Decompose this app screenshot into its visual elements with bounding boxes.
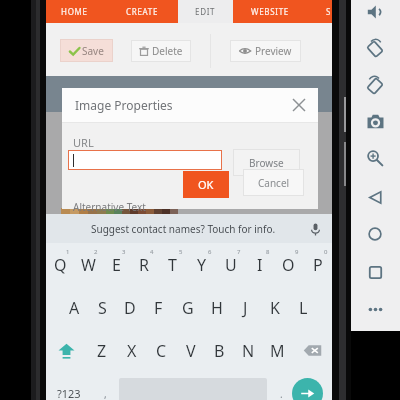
- button[interactable]: 9: [274, 243, 303, 286]
- staticText: W: [81, 254, 96, 276]
- button[interactable]: WEBSITE: [240, 0, 300, 23]
- staticText: O: [282, 254, 295, 276]
- staticText: R: [139, 254, 149, 276]
- staticText: X: [127, 340, 137, 362]
- button[interactable]: HOME: [44, 0, 104, 23]
- staticText: T: [168, 254, 177, 276]
- button[interactable]: ?123: [46, 372, 92, 400]
- staticText: WEBSITE: [251, 6, 289, 17]
- staticText: A: [69, 297, 80, 319]
- button[interactable]: D: [116, 286, 144, 329]
- button[interactable]: N: [234, 329, 263, 372]
- button[interactable]: J: [231, 286, 260, 329]
- staticText: M: [270, 340, 285, 362]
- staticText: F: [154, 297, 163, 319]
- staticText: J: [243, 297, 248, 319]
- staticText: 4: [150, 248, 154, 256]
- staticText: Delete: [152, 44, 183, 58]
- button[interactable]: 5: [158, 243, 187, 286]
- button[interactable]: 2: [74, 243, 102, 286]
- staticText: Browse: [249, 156, 284, 170]
- staticText: S: [326, 6, 332, 17]
- button[interactable]: 7: [216, 243, 245, 286]
- button[interactable]: Overview: [363, 260, 387, 284]
- button[interactable]: More: [363, 297, 387, 321]
- staticText: 3: [122, 248, 126, 256]
- button[interactable]: S: [299, 0, 359, 23]
- staticText: L: [299, 297, 308, 319]
- staticText: Preview: [255, 44, 292, 58]
- button[interactable]: Volume: [363, 0, 387, 24]
- staticText: 2: [94, 248, 98, 256]
- button[interactable]: V: [176, 329, 205, 372]
- button[interactable]: Rotate left: [363, 36, 387, 60]
- button[interactable]: Rotate right: [363, 73, 387, 97]
- button[interactable]: L: [289, 286, 318, 329]
- button[interactable]: OK: [183, 171, 229, 198]
- button[interactable]: 4: [130, 243, 158, 286]
- staticText: G: [182, 297, 194, 319]
- button[interactable]: Preview: [230, 40, 301, 62]
- button[interactable]: EDIT: [178, 0, 233, 23]
- button[interactable]: Back: [363, 185, 387, 209]
- staticText: Q: [54, 254, 67, 276]
- staticText: Suggest contact names? Touch for info.: [91, 222, 276, 236]
- button[interactable]: C: [147, 329, 176, 372]
- staticText: 0: [324, 248, 328, 256]
- button[interactable]: Close dialog: [288, 94, 310, 116]
- staticText: B: [214, 340, 225, 362]
- staticText: D: [124, 297, 136, 319]
- button[interactable]: Enter: [292, 378, 323, 400]
- staticText: 7: [237, 248, 241, 256]
- button[interactable]: Save: [60, 39, 113, 62]
- button[interactable]: K: [260, 286, 289, 329]
- button[interactable]: A: [60, 286, 88, 329]
- button[interactable]: H: [202, 286, 231, 329]
- button[interactable]: .: [267, 372, 295, 400]
- button[interactable]: Z: [87, 329, 117, 372]
- staticText: 8: [266, 248, 270, 256]
- button[interactable]: 3: [102, 243, 130, 286]
- button[interactable]: 8: [245, 243, 274, 286]
- button[interactable]: Screenshot: [363, 109, 387, 133]
- button[interactable]: 6: [187, 243, 216, 286]
- staticText: Save: [82, 44, 104, 58]
- button[interactable]: X: [117, 329, 147, 372]
- staticText: 6: [208, 248, 212, 256]
- button[interactable]: CREATE: [112, 0, 172, 23]
- staticText: N: [242, 340, 255, 362]
- staticText: E: [112, 254, 121, 276]
- button[interactable]: Backspace: [292, 329, 332, 372]
- button[interactable]: M: [263, 329, 292, 372]
- button[interactable]: Zoom: [363, 146, 387, 170]
- button[interactable]: 0: [303, 243, 332, 286]
- staticText: Cancel: [258, 176, 290, 190]
- staticText: OK: [198, 177, 214, 192]
- staticText: S: [98, 297, 107, 319]
- button[interactable]: Voice input: [306, 220, 324, 238]
- staticText: EDIT: [195, 6, 216, 17]
- button[interactable]: Home: [363, 222, 387, 246]
- staticText: Z: [97, 340, 107, 362]
- staticText: 9: [295, 248, 299, 256]
- button[interactable]: Delete: [131, 40, 191, 62]
- staticText: H: [211, 297, 223, 319]
- staticText: 5: [179, 248, 183, 256]
- staticText: HOME: [61, 6, 88, 17]
- staticText: Alternative Text: [73, 200, 146, 214]
- button[interactable]: G: [173, 286, 202, 329]
- button[interactable]: Cancel: [243, 169, 304, 196]
- staticText: .: [280, 387, 283, 400]
- button[interactable]: Shift: [46, 329, 87, 372]
- button[interactable]: Emoji: [92, 372, 119, 400]
- staticText: URL: [73, 135, 94, 150]
- button[interactable]: F: [144, 286, 173, 329]
- button[interactable]: Browse: [233, 149, 300, 176]
- button[interactable]: B: [205, 329, 234, 372]
- button[interactable]: S: [88, 286, 116, 329]
- button[interactable]: 1: [46, 243, 74, 286]
- staticText: I: [257, 254, 263, 276]
- staticText: P: [313, 254, 323, 276]
- staticText: ,: [104, 387, 107, 400]
